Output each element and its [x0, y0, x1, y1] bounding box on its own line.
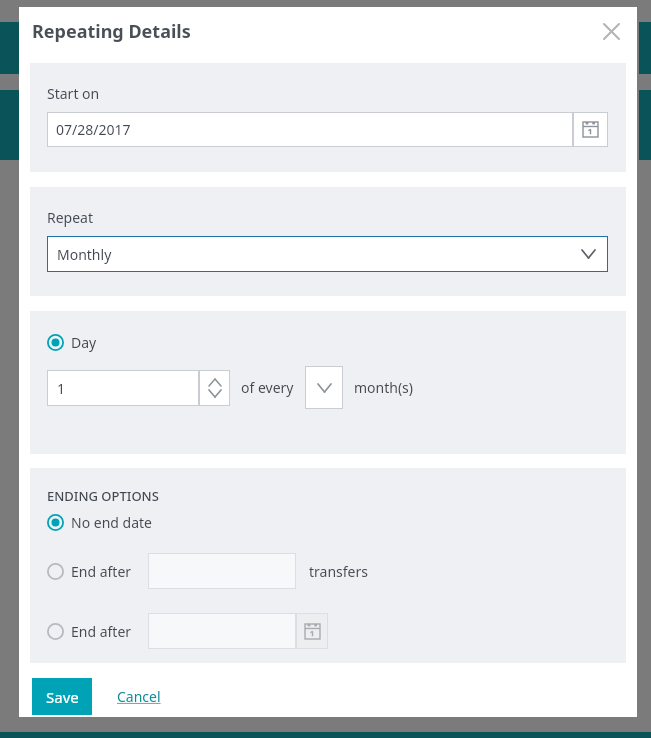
other: Pick date — [573, 112, 608, 147]
button[interactable]: Monthly — [47, 236, 608, 272]
staticText: End after — [71, 562, 132, 581]
staticText: Save — [46, 687, 79, 707]
staticText: Repeating Details — [32, 19, 191, 44]
other: Increment or decrement — [199, 370, 230, 406]
staticText: transfers — [309, 562, 368, 581]
button[interactable]: 07/28/2017 — [47, 112, 608, 147]
button[interactable]: 1 — [47, 370, 230, 406]
button[interactable] — [148, 553, 296, 589]
staticText: Monthly — [57, 245, 582, 264]
staticText: ENDING OPTIONS — [47, 487, 159, 505]
other: Pick end date — [296, 613, 328, 649]
button[interactable]: Cancel — [117, 687, 161, 706]
staticText: Start on — [47, 84, 100, 103]
staticText: Day — [71, 333, 97, 352]
button[interactable]: End after — [47, 562, 132, 581]
button[interactable]: Day — [47, 333, 97, 352]
staticText: month(s) — [354, 378, 414, 397]
staticText: of every — [241, 378, 294, 397]
staticText: Repeat — [47, 208, 94, 227]
staticText: 1 — [57, 379, 66, 398]
button[interactable]: End after — [47, 622, 132, 641]
button[interactable]: Close — [594, 14, 628, 48]
button[interactable]: No end date — [47, 513, 152, 532]
staticText: No end date — [71, 513, 152, 532]
staticText: 07/28/2017 — [56, 120, 131, 139]
button[interactable]: Save — [32, 678, 92, 715]
button[interactable]: Select month — [305, 366, 343, 409]
staticText: Cancel — [117, 687, 161, 706]
button[interactable]: Pick end date — [148, 613, 328, 649]
staticText: End after — [71, 622, 132, 641]
